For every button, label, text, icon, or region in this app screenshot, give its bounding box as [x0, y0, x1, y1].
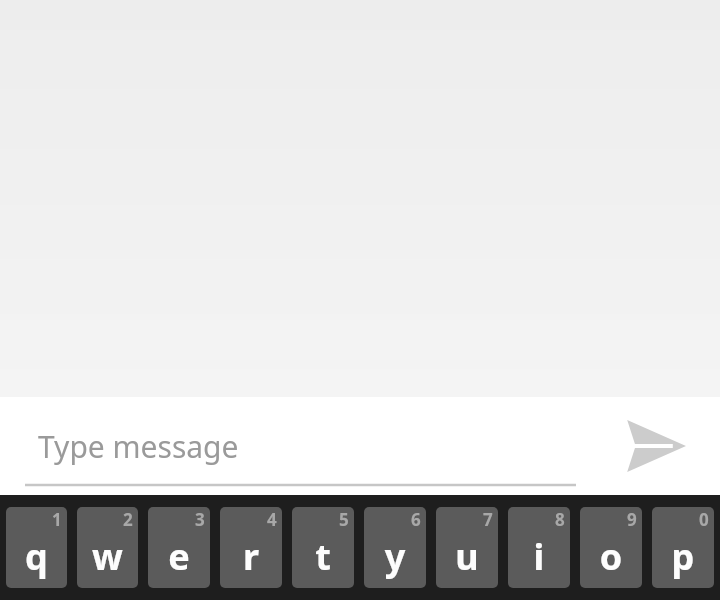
button[interactable]: 4: [220, 507, 282, 588]
staticText: w: [77, 532, 138, 581]
button[interactable]: 6: [364, 507, 426, 588]
staticText: u: [436, 532, 498, 581]
button[interactable]: 5: [292, 507, 354, 588]
button[interactable]: 9: [580, 507, 642, 588]
button[interactable]: Send: [606, 397, 706, 495]
staticText: r: [220, 532, 282, 581]
button[interactable]: 0: [652, 507, 714, 588]
staticText: y: [364, 532, 426, 581]
staticText: 5: [339, 508, 349, 531]
staticText: 2: [123, 508, 133, 531]
staticText: q: [6, 532, 67, 581]
button[interactable]: 2: [77, 507, 138, 588]
staticText: 7: [483, 508, 493, 531]
staticText: 3: [195, 508, 205, 531]
staticText: 6: [411, 508, 421, 531]
staticText: 9: [627, 508, 637, 531]
staticText: 8: [555, 508, 565, 531]
staticText: e: [148, 532, 210, 581]
staticText: 4: [267, 508, 277, 531]
staticText: Type message: [38, 426, 239, 467]
staticText: p: [652, 532, 714, 581]
button[interactable]: 3: [148, 507, 210, 588]
staticText: o: [580, 532, 642, 581]
button[interactable]: Type message: [0, 397, 600, 495]
staticText: i: [508, 532, 570, 581]
button[interactable]: 7: [436, 507, 498, 588]
staticText: 0: [699, 508, 709, 531]
staticText: 1: [52, 508, 62, 531]
staticText: t: [292, 532, 354, 581]
button[interactable]: 1: [6, 507, 67, 588]
button[interactable]: 8: [508, 507, 570, 588]
